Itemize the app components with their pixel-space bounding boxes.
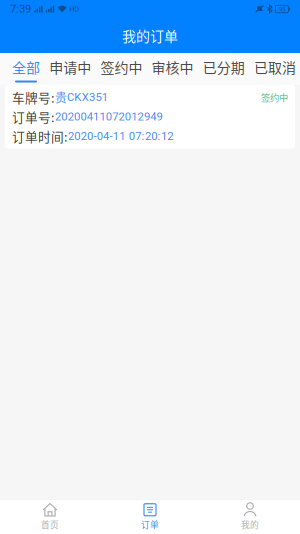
staticText: 签约中 [100, 57, 142, 77]
staticText: 2020-04-11 07:20:12 [68, 130, 173, 143]
staticText: HD [69, 5, 79, 13]
staticText: 已取消 [254, 57, 296, 77]
button[interactable]: 已分期 [203, 53, 245, 84]
button[interactable]: 车牌号: [5, 85, 295, 148]
staticText: 审核中 [152, 57, 194, 77]
button[interactable]: 签约中 [100, 53, 142, 84]
staticText: 申请中 [49, 57, 91, 77]
staticText: 7:39 [10, 2, 31, 16]
staticText: 签约中 [261, 90, 288, 104]
staticText: 我的订单 [122, 25, 178, 46]
staticText: 我的 [241, 518, 259, 531]
button[interactable]: 订单 [100, 500, 200, 534]
staticText: 贵 [55, 89, 67, 106]
button[interactable]: 全部 [12, 53, 40, 84]
button[interactable]: 申请中 [49, 53, 91, 84]
staticText: 首页 [41, 518, 59, 531]
staticText: 全部 [12, 57, 40, 77]
staticText: CKX351 [67, 91, 108, 104]
button[interactable]: 已取消 [254, 53, 296, 84]
staticText: 车牌号: [12, 88, 55, 106]
button[interactable]: 审核中 [152, 53, 194, 84]
staticText: 95 [279, 5, 285, 12]
staticText: 订单时间: [12, 127, 68, 145]
staticText: 订单 [141, 518, 159, 531]
button[interactable]: 我的 [200, 500, 300, 534]
button[interactable]: 首页 [0, 500, 100, 534]
staticText: 20200411072012949 [55, 110, 163, 123]
staticText: 已分期 [203, 57, 245, 77]
staticText: 订单号: [12, 108, 55, 126]
